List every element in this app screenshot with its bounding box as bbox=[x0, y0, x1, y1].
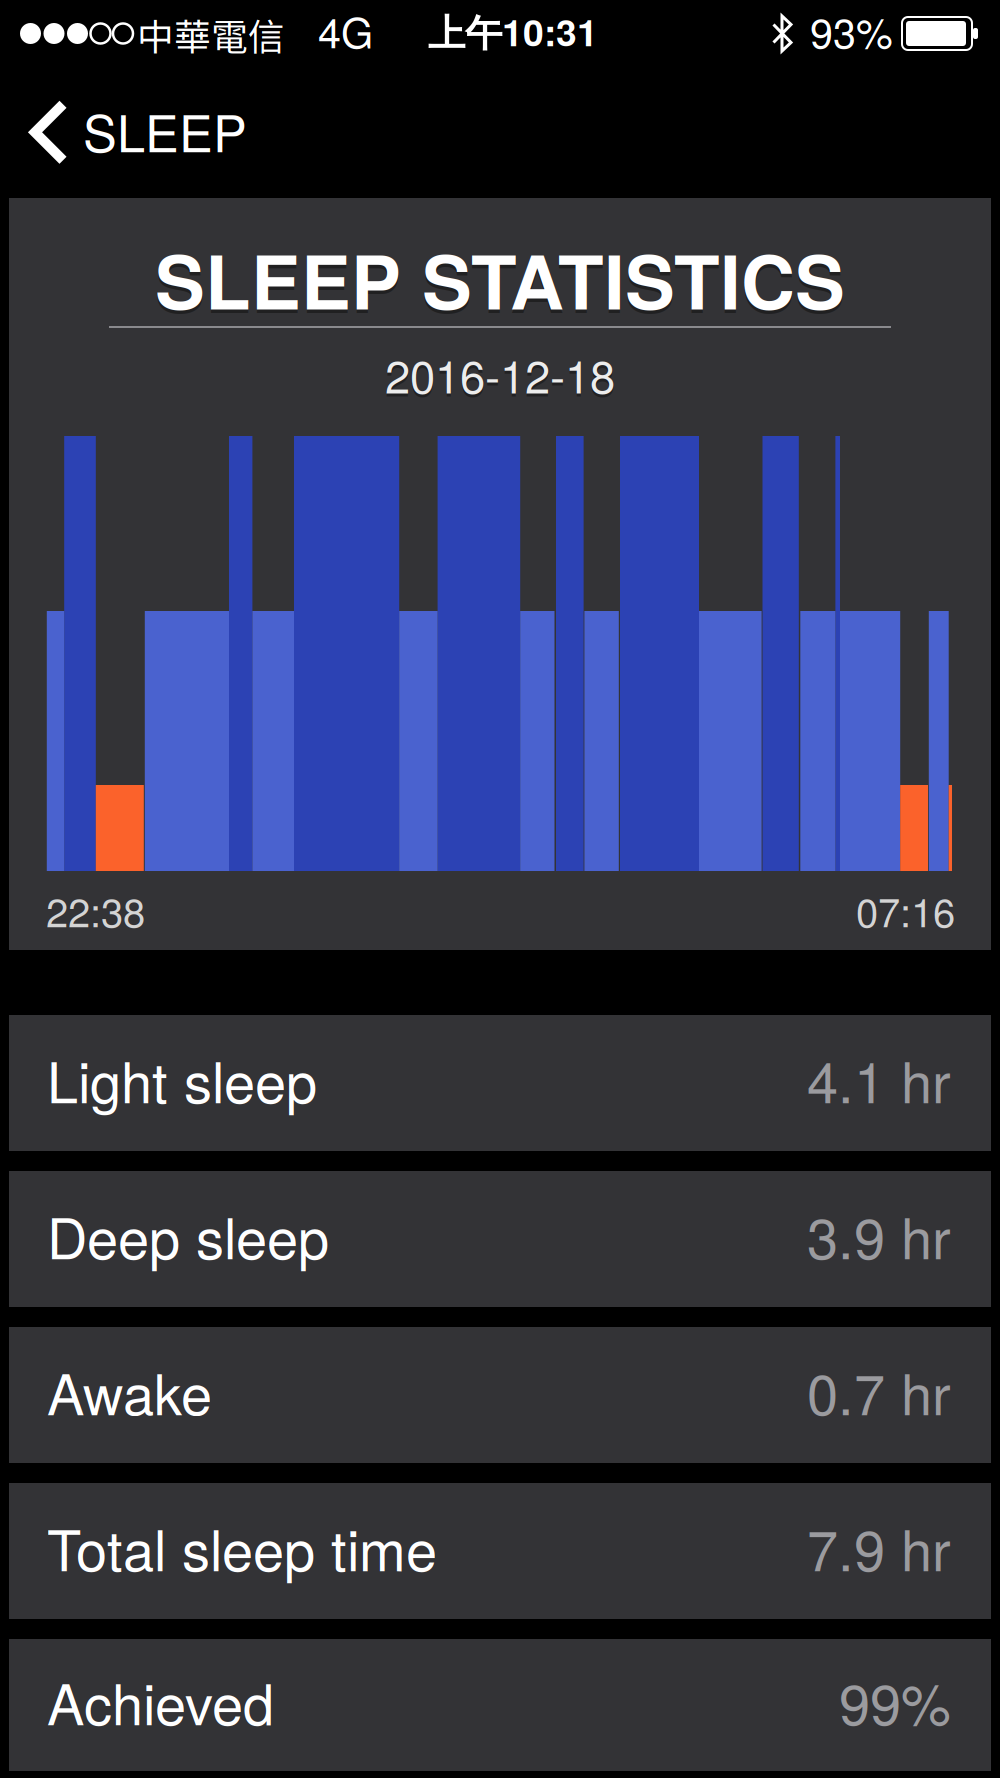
button[interactable]: Back bbox=[0, 96, 247, 169]
staticText: Deep sleep bbox=[47, 1195, 329, 1275]
staticText: 99% bbox=[839, 1661, 951, 1741]
staticText: 2016-12-18 bbox=[385, 344, 615, 409]
staticText: 2016-12-18 bbox=[385, 341, 615, 406]
staticText: 上午10:31 bbox=[428, 4, 598, 58]
staticText: Achieved bbox=[47, 1661, 274, 1741]
staticText: 93% bbox=[810, 1, 893, 60]
staticText: SLEEP STATISTICS bbox=[155, 225, 845, 332]
staticText: SLEEP STATISTICS bbox=[155, 229, 845, 336]
staticText: 3.9 hr bbox=[807, 1195, 951, 1275]
staticText: 4G bbox=[318, 1, 373, 60]
staticText: Light sleep bbox=[47, 1039, 317, 1119]
staticText: 4.1 hr bbox=[807, 1039, 951, 1119]
staticText: SLEEP bbox=[83, 94, 247, 167]
staticText: 中華電信 bbox=[137, 8, 285, 61]
staticText: Awake bbox=[47, 1351, 212, 1431]
staticText: 22:38 bbox=[46, 881, 145, 939]
staticText: 07:16 bbox=[856, 881, 955, 939]
staticText: Total sleep time bbox=[47, 1507, 437, 1587]
staticText: 7.9 hr bbox=[807, 1507, 951, 1587]
staticText: 0.7 hr bbox=[807, 1351, 951, 1431]
